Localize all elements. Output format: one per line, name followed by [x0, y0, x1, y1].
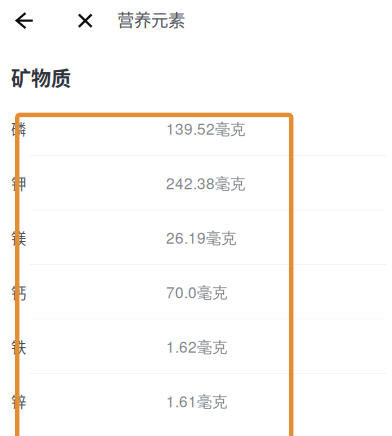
button[interactable]: 铁 — [0, 319, 392, 373]
button[interactable]: 磷 — [0, 101, 392, 155]
staticText: 1.61毫克 — [166, 390, 227, 412]
staticText: 磷 — [11, 117, 26, 139]
button[interactable]: 锌 — [0, 374, 392, 427]
staticText: 242.38毫克 — [166, 172, 245, 194]
staticText: 镁 — [11, 226, 26, 248]
staticText: 钾 — [11, 172, 26, 194]
staticText: 锌 — [11, 390, 26, 412]
staticText: 铁 — [11, 335, 26, 357]
button[interactable]: Close — [66, 2, 104, 40]
staticText: 139.52毫克 — [166, 117, 245, 139]
button[interactable]: 钙 — [0, 265, 392, 318]
staticText: 钙 — [11, 281, 26, 303]
button[interactable]: Back — [5, 2, 43, 40]
button[interactable]: 镁 — [0, 210, 392, 264]
staticText: 1.62毫克 — [166, 335, 227, 357]
staticText: 矿物质 — [11, 63, 71, 92]
staticText: 营养元素 — [117, 6, 185, 32]
staticText: 70.0毫克 — [166, 281, 227, 303]
button[interactable]: 钾 — [0, 156, 392, 209]
staticText: 26.19毫克 — [166, 226, 236, 248]
